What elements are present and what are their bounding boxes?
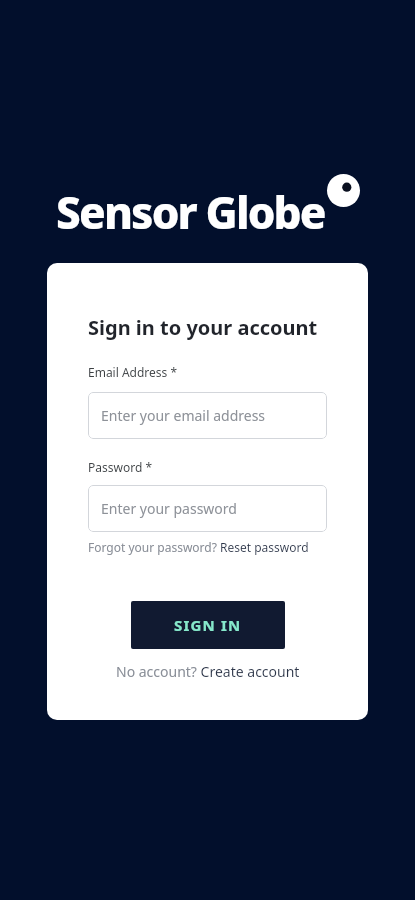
staticText: Enter your password — [101, 499, 237, 518]
staticText: Sensor Globe — [56, 182, 325, 242]
staticText: Email Address * — [88, 364, 178, 380]
button[interactable]: Enter your password — [88, 485, 327, 532]
button[interactable]: No account? Create account — [116, 662, 300, 681]
button[interactable]: Forgot your password? Reset password — [88, 539, 309, 555]
staticText: Enter your email address — [101, 406, 266, 425]
button[interactable]: SIGN IN — [131, 601, 285, 649]
staticText: SIGN IN — [174, 615, 242, 635]
staticText: Password * — [88, 459, 153, 475]
staticText: Sign in to your account — [88, 314, 318, 341]
button[interactable]: Enter your email address — [88, 392, 327, 439]
